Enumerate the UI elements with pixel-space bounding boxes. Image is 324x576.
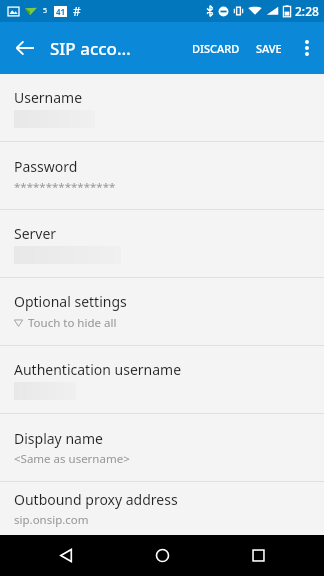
staticText: SAVE (256, 41, 282, 56)
staticText: SIP acco… (50, 37, 131, 60)
button[interactable]: Server (0, 210, 324, 277)
button[interactable]: SAVE (248, 22, 290, 74)
staticText: Username (14, 88, 83, 107)
button[interactable]: Outbound proxy address (0, 482, 324, 535)
staticText: <Same as username> (14, 451, 130, 467)
button[interactable]: More options (290, 22, 324, 74)
button[interactable]: DISCARD (184, 22, 248, 74)
button[interactable]: Password (0, 142, 324, 209)
staticText: 5 (43, 6, 48, 16)
staticText: Display name (14, 429, 103, 448)
staticText: 41 (56, 6, 66, 17)
staticText: # (73, 3, 81, 19)
staticText: Authentication username (14, 360, 182, 379)
button[interactable]: Back (36, 535, 96, 576)
staticText: sip.onsip.com (14, 512, 89, 528)
staticText: DISCARD (192, 41, 240, 56)
staticText: Outbound proxy address (14, 490, 178, 509)
button[interactable]: Authentication username (0, 346, 324, 413)
staticText: **************** (14, 179, 116, 195)
button[interactable]: Display name (0, 414, 324, 481)
staticText: Password (14, 157, 78, 176)
button[interactable]: Username (0, 74, 324, 141)
staticText: 2:28 (295, 3, 319, 19)
button[interactable]: Back (0, 22, 50, 74)
staticText: Optional settings (14, 292, 127, 311)
button[interactable]: Optional settings (0, 278, 324, 345)
button[interactable]: Home (132, 535, 192, 576)
staticText: Touch to hide all (28, 315, 117, 331)
button[interactable]: Recent apps (228, 535, 288, 576)
staticText: Server (14, 224, 57, 243)
